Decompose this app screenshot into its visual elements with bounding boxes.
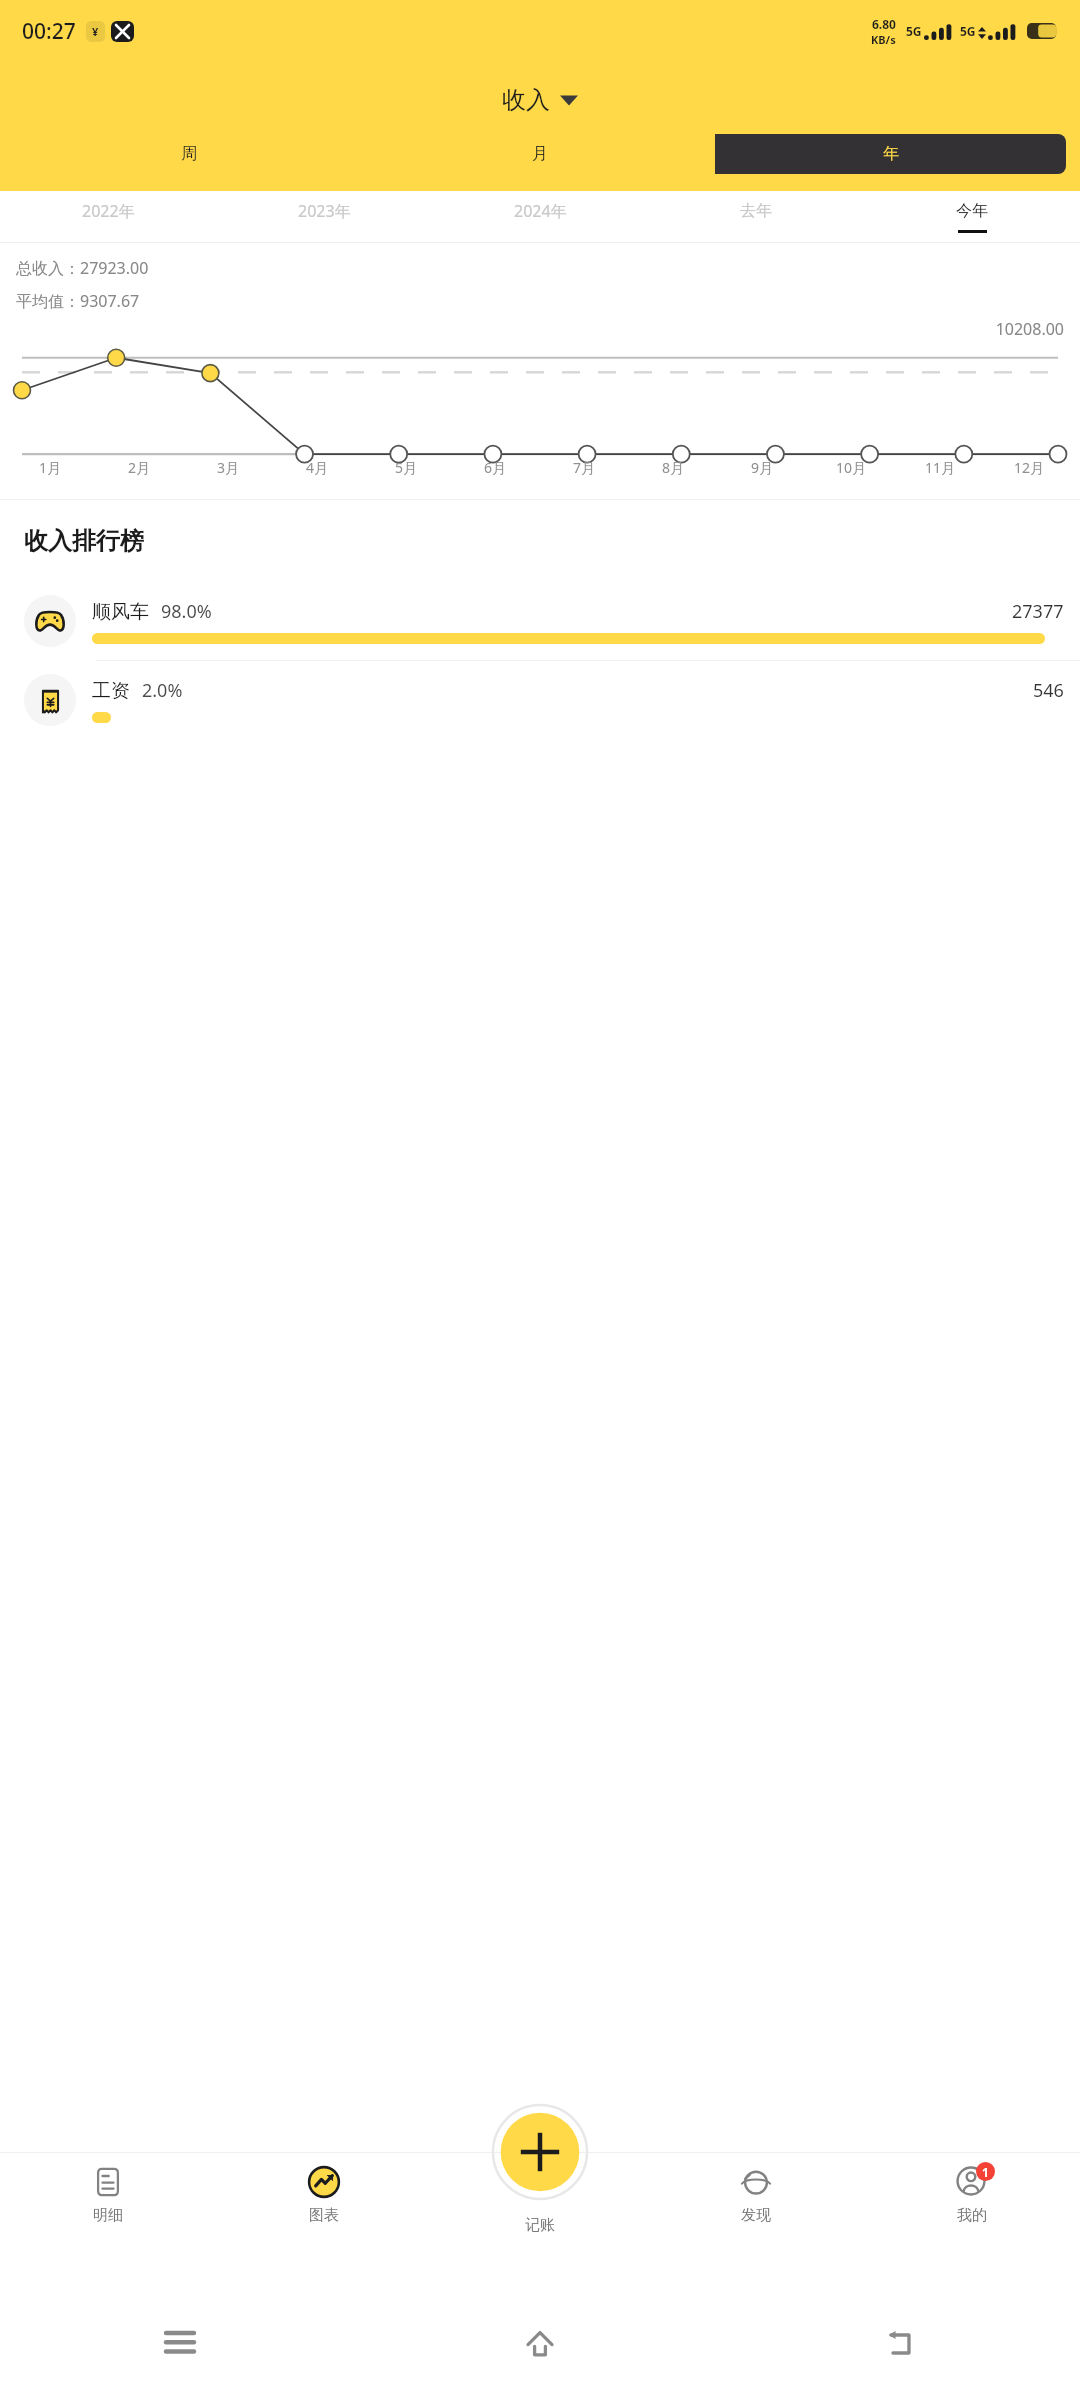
button[interactable]: 周 xyxy=(14,134,364,174)
staticText: 记账 xyxy=(525,2216,555,2235)
staticText: 2024年 xyxy=(514,200,567,222)
button[interactable]: 今年 xyxy=(864,191,1080,243)
staticText: 今年 xyxy=(956,201,988,221)
button[interactable]: 去年 xyxy=(648,191,864,243)
button[interactable]: Recent apps xyxy=(0,2288,360,2400)
button[interactable]: 明细 xyxy=(0,2152,216,2288)
button[interactable]: 2023年 xyxy=(216,191,432,243)
staticText: KB/s xyxy=(871,32,896,47)
staticText: 2.0% xyxy=(142,678,183,703)
button[interactable]: 2024年 xyxy=(432,191,648,243)
staticText: 9月 xyxy=(751,458,774,477)
staticText: 1 xyxy=(982,2164,989,2180)
staticText: 7月 xyxy=(573,458,596,477)
staticText: 月 xyxy=(532,144,548,164)
staticText: 去年 xyxy=(740,201,772,221)
button[interactable]: 工资 xyxy=(0,661,1080,739)
staticText: 27377 xyxy=(1012,599,1064,624)
staticText: ¥ xyxy=(92,24,99,39)
button[interactable]: 月 xyxy=(364,134,715,174)
staticText: 年 xyxy=(883,144,899,164)
button[interactable]: 发现 xyxy=(648,2152,864,2288)
staticText: 00:27 xyxy=(22,17,76,46)
staticText: 平均值：9307.67 xyxy=(16,290,140,312)
staticText: 2月 xyxy=(128,458,151,477)
staticText: 1月 xyxy=(39,458,62,477)
staticText: 6.80 xyxy=(872,16,896,32)
staticText: 我的 xyxy=(957,2206,987,2225)
staticText: 明细 xyxy=(93,2206,123,2225)
staticText: 8月 xyxy=(662,458,685,477)
staticText: 发现 xyxy=(741,2206,771,2225)
staticText: 546 xyxy=(1033,678,1064,703)
staticText: 周 xyxy=(181,144,197,164)
button[interactable]: 记账 Add record xyxy=(492,2104,588,2200)
staticText: 10208.00 xyxy=(0,318,1064,340)
staticText: 收入 xyxy=(502,85,550,115)
staticText: 3月 xyxy=(217,458,240,477)
staticText: 4月 xyxy=(306,458,329,477)
button[interactable]: 1 xyxy=(864,2152,1080,2288)
staticText: 10月 xyxy=(836,458,867,477)
staticText: 工资 xyxy=(92,679,130,703)
staticText: 5G xyxy=(906,23,922,39)
staticText: 收入排行榜 xyxy=(24,526,144,556)
button[interactable]: Home xyxy=(360,2288,720,2400)
staticText: 总收入：27923.00 xyxy=(16,257,149,279)
staticText: 2022年 xyxy=(82,200,135,222)
staticText: 图表 xyxy=(309,2206,339,2225)
button[interactable]: Back xyxy=(720,2288,1080,2400)
staticText: 5月 xyxy=(395,458,418,477)
staticText: 顺风车 xyxy=(92,600,149,624)
button[interactable]: 图表 xyxy=(216,2152,432,2288)
staticText: 6月 xyxy=(484,458,507,477)
staticText: 12月 xyxy=(1014,458,1045,477)
staticText: 11月 xyxy=(925,458,956,477)
staticText: 5G xyxy=(960,23,976,39)
button[interactable]: 顺风车 xyxy=(0,582,1080,660)
button[interactable]: 收入 xyxy=(494,81,586,119)
button[interactable]: 2022年 xyxy=(0,191,216,243)
staticText: 2023年 xyxy=(298,200,351,222)
button[interactable]: 年 xyxy=(715,134,1066,174)
staticText: 98.0% xyxy=(161,599,212,624)
